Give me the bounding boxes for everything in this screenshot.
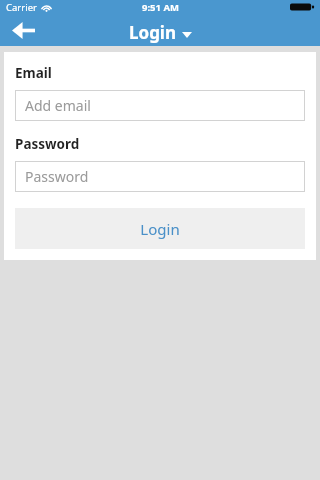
staticText: Carrier xyxy=(6,1,37,14)
button[interactable]: Login xyxy=(129,21,192,44)
staticText: Password xyxy=(25,167,89,186)
staticText: Email xyxy=(15,64,52,82)
button[interactable]: Back xyxy=(6,17,40,43)
staticText: Password xyxy=(15,135,80,153)
button[interactable]: Login xyxy=(15,208,305,249)
staticText: 9:51 AM xyxy=(142,1,179,14)
button[interactable]: Password xyxy=(15,161,305,192)
staticText: Login xyxy=(129,21,177,44)
button[interactable]: Add email xyxy=(15,90,305,121)
staticText: Login xyxy=(140,219,180,239)
staticText: Add email xyxy=(25,96,91,115)
